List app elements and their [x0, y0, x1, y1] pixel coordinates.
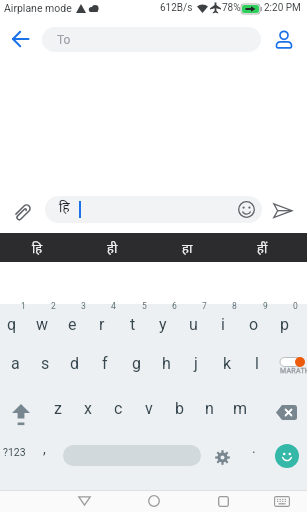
staticText: 2 [51, 301, 56, 311]
button[interactable]: g [121, 350, 151, 376]
staticText: t [130, 315, 136, 334]
staticText: e [68, 315, 77, 334]
staticText: 7 [202, 301, 207, 311]
button[interactable] [266, 198, 300, 224]
button[interactable]: v [134, 395, 164, 421]
button[interactable]: हीं [225, 233, 300, 262]
button[interactable]: p [269, 311, 299, 337]
button[interactable] [140, 490, 168, 512]
staticText: हा [182, 239, 193, 257]
button[interactable]: i [208, 311, 238, 337]
button[interactable] [70, 490, 98, 512]
button[interactable]: w [27, 311, 57, 337]
staticText: हीं [257, 239, 268, 257]
staticText: q [7, 315, 17, 334]
staticText: n [205, 399, 214, 418]
button[interactable]: ?123 [0, 440, 36, 468]
staticText: c [114, 399, 123, 418]
button[interactable]: l [242, 350, 272, 376]
button[interactable] [267, 490, 297, 512]
button[interactable]: d [60, 350, 90, 376]
staticText: k [223, 354, 232, 373]
staticText: 1 [21, 301, 26, 311]
staticText: i [221, 315, 225, 334]
staticText: r [99, 315, 105, 334]
staticText: f [102, 354, 108, 373]
button[interactable]: f [90, 350, 120, 376]
button[interactable] [4, 24, 36, 54]
staticText: m [233, 399, 248, 418]
staticText: h [162, 354, 171, 373]
staticText: o [249, 315, 259, 334]
staticText: , [43, 441, 46, 457]
staticText: p [280, 315, 289, 334]
button[interactable] [272, 400, 300, 424]
button[interactable]: t [118, 311, 148, 337]
staticText: b [175, 399, 184, 418]
staticText: j [194, 354, 198, 373]
button[interactable]: k [212, 350, 242, 376]
staticText: Airplane mode [4, 2, 72, 14]
staticText: s [41, 354, 50, 373]
button[interactable] [268, 24, 300, 54]
staticText: 0 [293, 301, 298, 311]
staticText: ही [107, 239, 118, 257]
staticText: v [145, 399, 153, 418]
button[interactable]: u [178, 311, 208, 337]
staticText: 2:20 PM [264, 2, 301, 14]
button[interactable]: m [225, 395, 255, 421]
staticText: d [70, 354, 80, 373]
staticText: a [11, 354, 20, 373]
staticText: 8 [232, 301, 237, 311]
button[interactable]: z [43, 395, 73, 421]
staticText: . [252, 440, 256, 456]
button[interactable] [8, 402, 34, 428]
button[interactable] [211, 446, 233, 468]
button[interactable]: To [42, 27, 261, 52]
button[interactable]: y [148, 311, 178, 337]
staticText: y [159, 315, 167, 334]
button[interactable] [63, 445, 201, 466]
staticText: 4 [111, 301, 116, 311]
staticText: 6 [172, 301, 177, 311]
button[interactable]: हा [150, 233, 225, 262]
button[interactable]: s [30, 350, 60, 376]
button[interactable]: ही [75, 233, 150, 262]
button[interactable]: q [0, 311, 27, 337]
staticText: To [57, 33, 71, 47]
button[interactable]: हि [0, 233, 75, 262]
staticText: 612B/s [160, 2, 193, 14]
staticText: 9 [263, 301, 268, 311]
staticText: l [255, 354, 259, 373]
staticText: x [84, 399, 92, 418]
button[interactable] [8, 197, 38, 227]
staticText: हि [59, 198, 70, 216]
button[interactable]: h [151, 350, 181, 376]
staticText: 78% [222, 2, 241, 14]
button[interactable]: r [87, 311, 117, 337]
staticText: z [54, 399, 62, 418]
staticText: g [132, 354, 141, 373]
staticText: 5 [142, 301, 147, 311]
button[interactable]: o [239, 311, 269, 337]
button[interactable]: n [194, 395, 224, 421]
staticText: u [189, 315, 198, 334]
button[interactable] [275, 444, 299, 468]
staticText: हि [32, 239, 43, 257]
staticText: 3 [81, 301, 86, 311]
staticText: MARATHI [280, 367, 307, 375]
staticText: w [36, 315, 49, 334]
button[interactable]: e [57, 311, 87, 337]
staticText: ?123 [3, 446, 26, 458]
button[interactable]: c [103, 395, 133, 421]
button[interactable]: x [73, 395, 103, 421]
button[interactable]: a [0, 350, 30, 376]
button[interactable]: j [181, 350, 211, 376]
button[interactable]: हि [45, 196, 262, 223]
button[interactable]: b [164, 395, 194, 421]
button[interactable] [209, 490, 237, 512]
